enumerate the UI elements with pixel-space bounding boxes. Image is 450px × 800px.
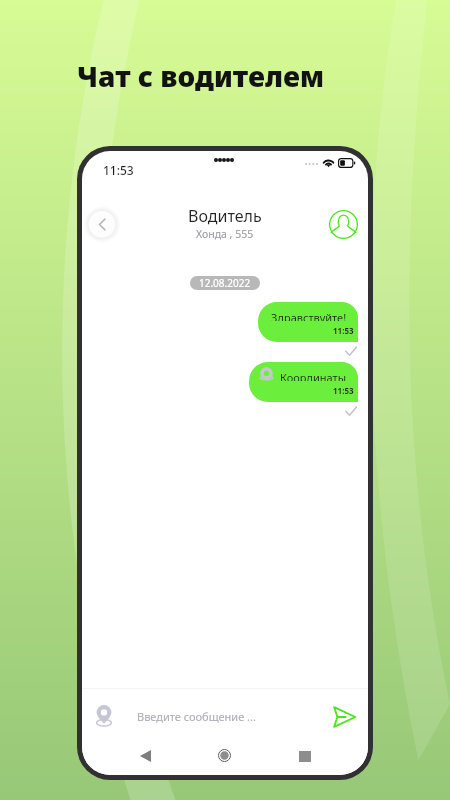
staticText: 12.08.2022: [199, 276, 251, 290]
staticText: Здравствуйте!: [271, 310, 347, 321]
staticText: Координаты: [280, 370, 347, 381]
button[interactable]: Back: [84, 206, 120, 242]
staticText: Введите сообщение ...: [137, 709, 331, 724]
staticText: 11:53: [333, 325, 354, 336]
button[interactable]: Координаты: [249, 362, 358, 402]
button[interactable]: Attach location: [91, 704, 117, 730]
button[interactable]: Back: [140, 750, 151, 762]
staticText: 11:53: [333, 385, 354, 396]
button[interactable]: Send message: [331, 704, 357, 730]
staticText: 11:53: [103, 162, 134, 178]
button[interactable]: Home: [218, 749, 231, 762]
staticText: Водитель: [188, 205, 262, 227]
button[interactable]: Здравствуйте!: [258, 302, 358, 342]
staticText: Хонда , 555: [196, 227, 254, 241]
staticText: Чат с водителем: [77, 57, 324, 95]
button[interactable]: Driver profile: [329, 210, 358, 239]
